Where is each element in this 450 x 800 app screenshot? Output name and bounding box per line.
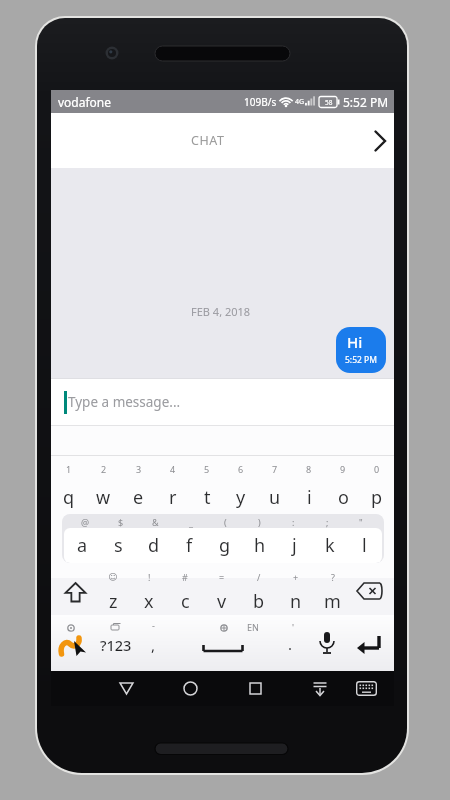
staticText: h bbox=[254, 533, 266, 558]
staticText: . bbox=[288, 634, 293, 654]
button[interactable] bbox=[309, 623, 345, 667]
staticText: ; bbox=[326, 516, 329, 528]
staticText: ) bbox=[258, 516, 261, 528]
staticText: 4G bbox=[295, 97, 305, 107]
button[interactable]: b bbox=[240, 585, 277, 617]
staticText: CHAT bbox=[191, 132, 225, 149]
staticText: s bbox=[114, 533, 123, 558]
button[interactable]: m bbox=[314, 585, 351, 617]
staticText: e bbox=[133, 485, 144, 510]
button[interactable]: d bbox=[136, 528, 172, 563]
button[interactable]: ?123 bbox=[92, 626, 140, 664]
staticText: @ bbox=[81, 516, 90, 528]
staticText: & bbox=[152, 516, 159, 528]
button[interactable]: z bbox=[95, 585, 131, 617]
staticText: / bbox=[257, 571, 261, 583]
button[interactable]: Hi bbox=[336, 327, 386, 373]
button[interactable]: g bbox=[207, 528, 242, 563]
staticText: ☺ bbox=[108, 572, 118, 582]
button[interactable]: f bbox=[172, 528, 207, 563]
staticText: Type a message... bbox=[68, 393, 181, 411]
button[interactable]: 1 bbox=[51, 426, 394, 671]
staticText: p bbox=[371, 485, 383, 510]
button[interactable]: x bbox=[131, 585, 167, 617]
staticText: $ bbox=[118, 516, 124, 528]
button[interactable] bbox=[181, 623, 267, 667]
button[interactable] bbox=[64, 582, 87, 603]
button[interactable]: Type a message... bbox=[51, 378, 394, 426]
staticText: = bbox=[219, 571, 225, 583]
button[interactable] bbox=[53, 623, 91, 667]
button[interactable]: j bbox=[277, 528, 312, 563]
button[interactable] bbox=[111, 671, 141, 706]
button[interactable]: k bbox=[312, 528, 347, 563]
button[interactable]: p bbox=[360, 482, 394, 512]
button[interactable] bbox=[240, 671, 270, 706]
button[interactable] bbox=[351, 671, 381, 706]
staticText: + bbox=[293, 571, 299, 583]
staticText: ! bbox=[148, 571, 151, 583]
button[interactable]: o bbox=[326, 482, 360, 512]
staticText: : bbox=[292, 516, 295, 528]
staticText: 9 bbox=[340, 463, 346, 475]
staticText: b bbox=[253, 589, 265, 614]
staticText: j bbox=[292, 533, 297, 558]
staticText: i bbox=[307, 485, 312, 510]
staticText: 4 bbox=[170, 463, 176, 475]
staticText: n bbox=[290, 589, 302, 614]
staticText: EN bbox=[247, 621, 259, 633]
button[interactable] bbox=[349, 623, 391, 667]
staticText: 5 bbox=[204, 463, 210, 475]
staticText: 1 bbox=[66, 463, 72, 475]
staticText: y bbox=[236, 485, 246, 510]
button[interactable] bbox=[357, 113, 403, 168]
staticText: t bbox=[204, 485, 211, 510]
staticText: Hi bbox=[347, 332, 363, 352]
button[interactable] bbox=[143, 623, 171, 667]
button[interactable]: r bbox=[156, 482, 190, 512]
staticText: ' bbox=[292, 621, 295, 633]
button[interactable]: a bbox=[64, 528, 100, 563]
staticText: z bbox=[109, 589, 118, 614]
button[interactable]: t bbox=[190, 482, 224, 512]
staticText: m bbox=[324, 589, 341, 614]
staticText: d bbox=[148, 533, 160, 558]
button[interactable] bbox=[305, 671, 335, 706]
staticText: u bbox=[269, 485, 281, 510]
button[interactable] bbox=[175, 671, 205, 706]
staticText: 58 bbox=[325, 98, 333, 107]
button[interactable]: v bbox=[203, 585, 240, 617]
button[interactable]: s bbox=[100, 528, 136, 563]
button[interactable]: h bbox=[242, 528, 277, 563]
button[interactable]: n bbox=[277, 585, 314, 617]
staticText: w bbox=[96, 485, 111, 510]
staticText: a bbox=[77, 533, 88, 558]
button[interactable]: w bbox=[86, 482, 121, 512]
staticText: vodafone bbox=[58, 94, 112, 110]
staticText: g bbox=[219, 533, 231, 558]
button[interactable]: u bbox=[258, 482, 292, 512]
button[interactable]: l bbox=[347, 528, 382, 563]
button[interactable] bbox=[279, 623, 305, 667]
button[interactable]: i bbox=[292, 482, 326, 512]
staticText: # bbox=[182, 571, 188, 583]
button[interactable] bbox=[356, 582, 383, 600]
button[interactable]: c bbox=[167, 585, 203, 617]
staticText: v bbox=[217, 589, 227, 614]
button[interactable]: y bbox=[224, 482, 258, 512]
staticText: 109B/s bbox=[244, 95, 279, 109]
staticText: l bbox=[362, 533, 367, 558]
button[interactable]: e bbox=[121, 482, 156, 512]
staticText: 5:52 PM bbox=[343, 94, 389, 110]
staticText: 7 bbox=[272, 463, 278, 475]
staticText: , bbox=[151, 635, 156, 655]
staticText: o bbox=[338, 485, 349, 510]
staticText: q bbox=[63, 485, 75, 510]
button[interactable]: q bbox=[51, 482, 86, 512]
staticText: - bbox=[152, 619, 155, 631]
staticText: 0 bbox=[374, 463, 380, 475]
staticText: r bbox=[169, 485, 177, 510]
staticText: 8 bbox=[306, 463, 312, 475]
staticText: " bbox=[359, 516, 363, 528]
staticText: FEB 4, 2018 bbox=[191, 304, 251, 319]
